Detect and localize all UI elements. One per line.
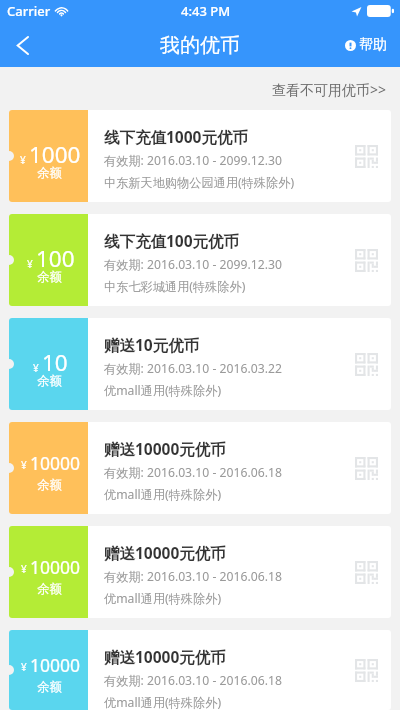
staticText: 赠送10000元优币 [104, 542, 226, 563]
button[interactable]: ¥ [9, 318, 391, 410]
staticText: 余额 [37, 477, 62, 493]
staticText: 赠送10元优币 [104, 334, 200, 355]
button[interactable]: ¥ [9, 110, 391, 202]
staticText: 余额 [37, 165, 62, 181]
button[interactable]: ¥ [9, 526, 391, 618]
staticText: ¥ [21, 458, 27, 472]
staticText: 线下充值100元优币 [104, 230, 240, 251]
staticText: 有效期: 2016.03.10 - 2016.03.22 [104, 360, 282, 377]
button[interactable]: 帮助 [345, 36, 387, 54]
staticText: ¥ [20, 153, 26, 167]
staticText: 100 [36, 243, 75, 274]
staticText: 帮助 [359, 36, 387, 54]
staticText: ¥ [33, 361, 39, 375]
staticText: 赠送10000元优币 [104, 646, 226, 667]
staticText: 有效期: 2016.03.10 - 2016.06.18 [104, 672, 282, 689]
staticText: 1000 [29, 139, 81, 170]
staticText: 中东七彩城通用(特殊除外) [104, 278, 246, 295]
staticText: 中东新天地购物公园通用(特殊除外) [104, 174, 295, 191]
staticText: 有效期: 2016.03.10 - 2016.06.18 [104, 464, 282, 481]
staticText: ¥ [21, 562, 27, 576]
staticText: 我的优币 [160, 33, 240, 58]
staticText: 10000 [30, 653, 81, 677]
staticText: 优mall通用(特殊除外) [104, 382, 222, 399]
staticText: 有效期: 2016.03.10 - 2099.12.30 [104, 256, 282, 273]
staticText: 10 [42, 347, 68, 378]
staticText: 余额 [37, 679, 62, 695]
staticText: 赠送10000元优币 [104, 438, 226, 459]
staticText: ¥ [27, 257, 33, 271]
staticText: 有效期: 2016.03.10 - 2016.06.18 [104, 568, 282, 585]
staticText: 优mall通用(特殊除外) [104, 486, 222, 503]
staticText: 有效期: 2016.03.10 - 2099.12.30 [104, 152, 282, 169]
button[interactable]: ¥ [9, 214, 391, 306]
button[interactable]: 查看不可用优币>> [272, 80, 387, 99]
button[interactable]: ¥ [9, 422, 391, 514]
button[interactable]: ¥ [9, 630, 391, 710]
staticText: 10000 [30, 555, 81, 579]
staticText: 线下充值1000元优币 [104, 126, 248, 147]
button[interactable]: Back [0, 23, 44, 67]
staticText: 4:43 PM [181, 2, 231, 20]
staticText: 10000 [30, 451, 81, 475]
staticText: 余额 [37, 373, 62, 389]
staticText: 余额 [37, 269, 62, 285]
staticText: 优mall通用(特殊除外) [104, 590, 222, 607]
staticText: 优mall通用(特殊除外) [104, 694, 222, 710]
staticText: 余额 [37, 581, 62, 597]
staticText: Carrier [7, 2, 51, 20]
staticText: ¥ [21, 660, 27, 674]
